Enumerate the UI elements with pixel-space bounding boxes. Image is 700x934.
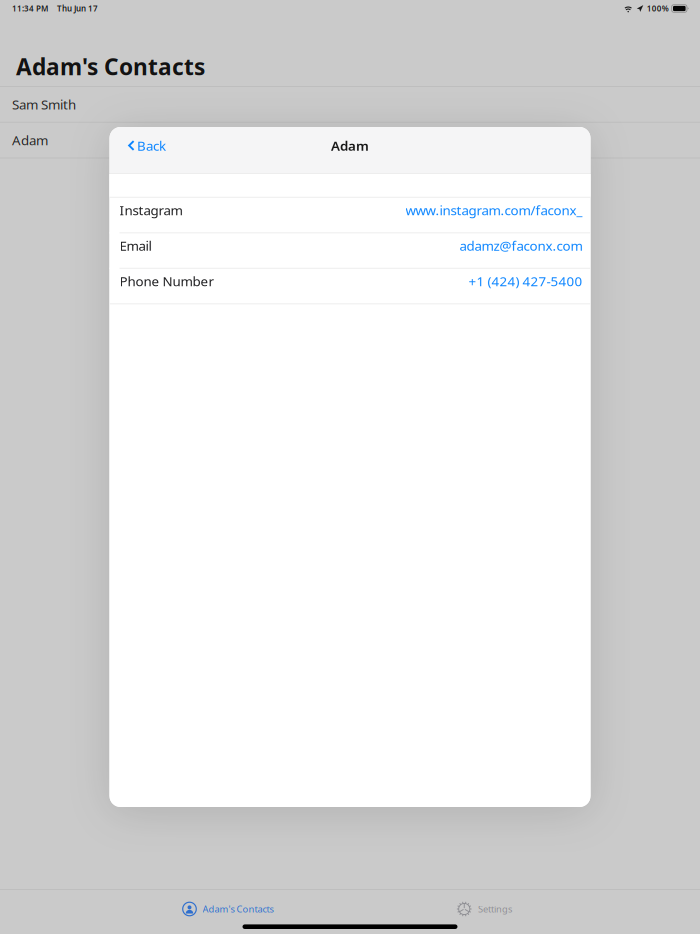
staticText: adamz@faconx.com	[459, 237, 582, 254]
staticText: Settings	[478, 903, 512, 915]
button[interactable]: Phone Number	[109, 269, 590, 304]
button[interactable]: Back	[109, 127, 176, 164]
staticText: Adam	[331, 137, 369, 154]
staticText: Instagram	[119, 201, 182, 219]
button[interactable]: Email	[109, 233, 590, 269]
button[interactable]: Adam	[0, 123, 700, 158]
button[interactable]: Instagram	[109, 198, 590, 233]
staticText: Adam's Contacts	[16, 51, 205, 81]
button[interactable]: Sam Smith	[0, 87, 700, 122]
staticText: 100%	[647, 3, 669, 14]
staticText: 11:34 PM	[12, 3, 48, 14]
staticText: www.instagram.com/faconx_	[405, 201, 582, 219]
button[interactable]: Settings	[445, 895, 523, 923]
staticText: Back	[137, 137, 166, 154]
staticText: +1 (424) 427-5400	[468, 272, 582, 290]
staticText: Adam's Contacts	[202, 903, 273, 915]
staticText: Phone Number	[119, 272, 214, 290]
staticText: Sam Smith	[12, 95, 76, 113]
button[interactable]: Adam's Contacts	[171, 895, 284, 923]
staticText: Email	[119, 237, 151, 254]
staticText: Thu Jun 17	[57, 3, 98, 14]
staticText: Adam	[12, 131, 48, 149]
